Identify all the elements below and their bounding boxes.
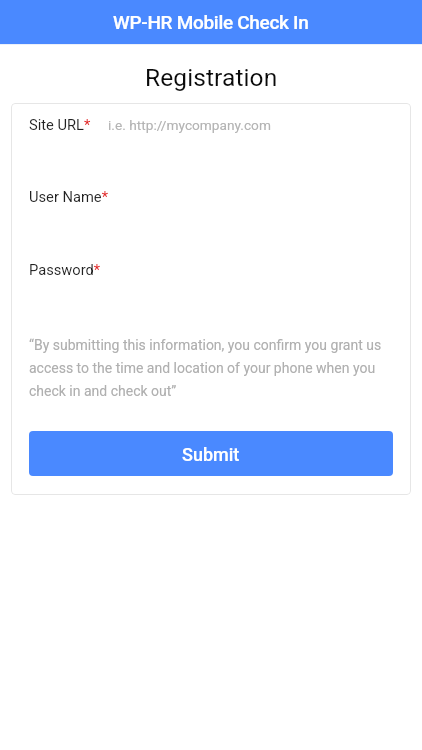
staticText: i.e. http://mycompany.com [108,117,271,133]
button[interactable]: Site URL* [29,116,393,133]
staticText: “By submitting this information, you con… [29,337,393,400]
button[interactable]: Submit [29,431,393,476]
staticText: Password* [29,261,101,278]
staticText: Registration [145,63,278,92]
staticText: Submit [182,444,240,465]
staticText: User Name* [29,188,108,205]
staticText: Site URL* [29,116,91,133]
button[interactable]: Password* [29,261,393,278]
button[interactable]: User Name* [29,188,393,205]
staticText: WP-HR Mobile Check In [113,11,309,33]
